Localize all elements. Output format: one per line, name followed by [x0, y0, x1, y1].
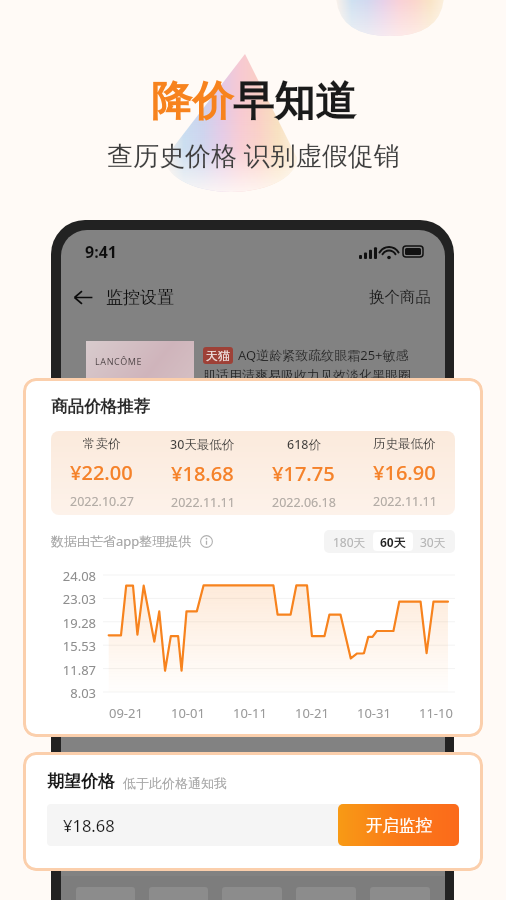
staticText: 19.28 — [51, 614, 96, 632]
staticText: 11-10 — [419, 704, 453, 722]
staticText: 10-31 — [357, 704, 391, 722]
staticText: ¥18.68 — [171, 460, 234, 487]
button[interactable]: Back — [70, 284, 96, 310]
button[interactable]: 开启监控 — [338, 804, 459, 846]
staticText: 天猫 — [206, 348, 230, 363]
staticText: 商品价格推荐 — [51, 396, 150, 417]
staticText: 查历史价格 识别虚假促销 — [107, 137, 400, 173]
button[interactable]: 180天 — [326, 532, 373, 551]
staticText: 数据由芒省app整理提供 — [51, 532, 192, 550]
staticText: 09-21 — [109, 704, 143, 722]
staticText: 历史最低价 — [373, 436, 436, 452]
button[interactable]: 换个商品 — [369, 287, 431, 307]
staticText: 23.03 — [51, 590, 96, 608]
staticText: 8.03 — [51, 684, 96, 702]
staticText: 180天 — [333, 534, 366, 550]
staticText: ¥22.00 — [70, 459, 133, 486]
staticText: 30天最低价 — [170, 436, 235, 453]
staticText: 618价 — [287, 436, 321, 453]
staticText: ¥17.75 — [272, 460, 335, 487]
staticText: 降价早知道 — [151, 76, 356, 128]
staticText: 2022.11.11 — [171, 494, 235, 511]
staticText: 10-11 — [233, 704, 267, 722]
staticText: 期望价格 — [47, 771, 115, 792]
staticText: AQ逆龄紧致疏纹眼霜25+敏感 — [238, 346, 409, 364]
staticText: 24.08 — [51, 567, 96, 585]
staticText: LANCÔME — [95, 355, 143, 367]
staticText: 换个商品 — [369, 287, 431, 307]
staticText: 30天 — [420, 534, 446, 550]
staticText: 监控设置 — [106, 287, 174, 308]
staticText: 2022.06.18 — [272, 494, 336, 511]
staticText: 15.53 — [51, 637, 96, 655]
staticText: 10-01 — [171, 704, 205, 722]
staticText: ¥16.90 — [373, 459, 436, 486]
staticText: 低于此价格通知我 — [123, 775, 227, 791]
staticText: 开启监控 — [366, 815, 432, 836]
button[interactable]: 30天 — [413, 532, 453, 551]
staticText: 2022.10.27 — [70, 493, 134, 510]
staticText: 肌适用清爽易吸收力见效淡化黑眼圈 — [203, 367, 411, 383]
staticText: 11.87 — [51, 661, 96, 679]
staticText: 常卖价 — [83, 436, 121, 452]
staticText: 2022.11.11 — [373, 493, 437, 510]
staticText: 60天 — [380, 534, 406, 550]
button[interactable]: 60天 — [373, 532, 413, 551]
staticText: ¥18.68 — [63, 814, 115, 836]
staticText: 9:41 — [85, 241, 117, 263]
staticText: 10-21 — [295, 704, 329, 722]
